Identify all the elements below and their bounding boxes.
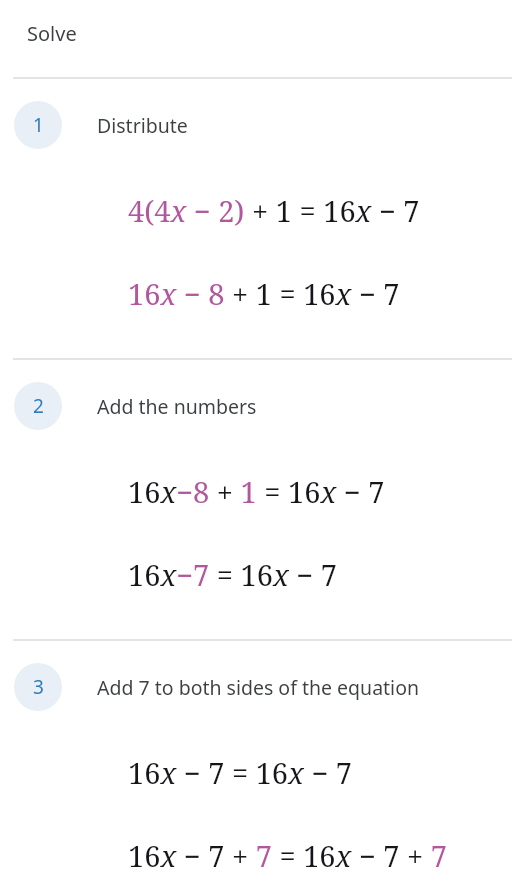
staticText: Solve (27, 20, 77, 47)
staticText: 16x − 7 = 16x − 7 (128, 753, 352, 792)
button[interactable]: 3 (0, 663, 512, 711)
staticText: Distribute (97, 112, 188, 139)
staticText: 2 (33, 393, 44, 419)
button[interactable]: 1 (0, 101, 512, 149)
staticText: 16x − 8 + 1 = 16x − 7 (128, 274, 400, 313)
staticText: 1 (33, 112, 44, 138)
staticText: Add the numbers (97, 393, 257, 420)
staticText: 16x − 7 + 7 = 16x − 7 + 7 (128, 836, 447, 875)
staticText: 3 (33, 674, 44, 700)
staticText: 16x−7 = 16x − 7 (128, 555, 337, 594)
button[interactable]: 2 (0, 382, 512, 430)
staticText: 4(4x − 2) + 1 = 16x − 7 (128, 191, 420, 230)
staticText: 16x−8 + 1 = 16x − 7 (128, 472, 385, 511)
staticText: Add 7 to both sides of the equation (97, 674, 420, 701)
